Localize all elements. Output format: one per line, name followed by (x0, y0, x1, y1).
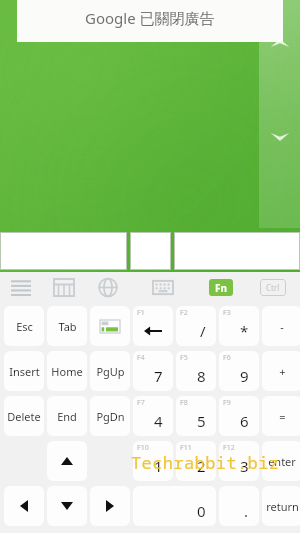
staticText: Ctrl (266, 282, 280, 293)
button[interactable]: Right (90, 486, 130, 526)
staticText: / (200, 321, 206, 341)
button[interactable]: Tab (47, 306, 87, 346)
staticText: Techrabbit.biz (131, 451, 280, 474)
staticText: Esc (16, 319, 33, 334)
staticText: Google 已關閉廣告 (85, 8, 215, 28)
button[interactable]: F11 (176, 441, 216, 481)
button[interactable]: F12 (219, 441, 259, 481)
button[interactable] (0, 232, 127, 270)
button[interactable]: Google 已關閉廣告 (17, 0, 283, 42)
button[interactable]: Language (97, 278, 119, 297)
button[interactable]: F5 (176, 351, 216, 391)
button[interactable]: 0 (133, 486, 216, 526)
staticText: enter (268, 454, 296, 469)
staticText: - (280, 319, 284, 334)
button[interactable]: F4 (133, 351, 173, 391)
staticText: Delete (7, 409, 41, 424)
button[interactable]: Ctrl (260, 279, 286, 296)
staticText: F5 (180, 353, 188, 363)
button[interactable] (174, 232, 300, 270)
staticText: 1 (154, 456, 163, 476)
staticText: Home (51, 364, 83, 379)
button[interactable]: F2 (176, 306, 216, 346)
button[interactable]: End (47, 396, 87, 436)
staticText: F4 (137, 353, 145, 363)
button[interactable]: F10 (133, 441, 173, 481)
button[interactable]: Menu (10, 278, 32, 297)
button[interactable]: F9 (219, 396, 259, 436)
staticText: 6 (240, 411, 249, 431)
button[interactable]: Up (47, 441, 87, 481)
button[interactable] (130, 232, 171, 270)
staticText: F3 (223, 308, 231, 318)
staticText: F2 (180, 308, 188, 318)
button[interactable]: Numpad toggle (90, 306, 130, 346)
button[interactable]: . (219, 486, 259, 526)
staticText: return (266, 499, 299, 514)
button[interactable]: F3 (219, 306, 259, 346)
button[interactable]: Keyboard (152, 278, 174, 297)
button[interactable]: Scroll up (269, 36, 291, 50)
button[interactable]: Delete (4, 396, 44, 436)
button[interactable]: Window (53, 278, 75, 297)
staticText: End (57, 409, 77, 424)
button[interactable]: F8 (176, 396, 216, 436)
staticText: F9 (223, 398, 231, 408)
staticText: Insert (9, 364, 40, 379)
staticText: F1 (137, 308, 145, 318)
staticText: Fn (215, 281, 227, 295)
button[interactable]: Scroll panel (259, 0, 300, 228)
staticText: + (279, 364, 286, 379)
button[interactable]: Insert (4, 351, 44, 391)
button[interactable]: + (262, 351, 300, 391)
button[interactable]: = (262, 396, 300, 436)
staticText: Tab (58, 319, 77, 334)
button[interactable]: Home (47, 351, 87, 391)
staticText: F10 (137, 443, 149, 453)
button[interactable]: Fn (209, 279, 233, 296)
button[interactable]: Down (47, 486, 87, 526)
staticText: 8 (197, 366, 206, 386)
button[interactable]: enter (262, 441, 300, 481)
staticText: 3 (240, 456, 249, 476)
staticText: 9 (240, 366, 249, 386)
button[interactable]: return (262, 486, 300, 526)
staticText: F12 (223, 443, 235, 453)
button[interactable]: Backspace (133, 306, 173, 346)
staticText: F11 (180, 443, 192, 453)
button[interactable]: PgDn (90, 396, 130, 436)
staticText: 5 (197, 411, 206, 431)
staticText: PgUp (96, 364, 125, 379)
staticText: PgDn (96, 409, 125, 424)
staticText: F8 (180, 398, 188, 408)
button[interactable]: Left (4, 486, 44, 526)
staticText: F6 (223, 353, 231, 363)
button[interactable]: - (262, 306, 300, 346)
button[interactable]: F7 (133, 396, 173, 436)
staticText: 0 (197, 501, 206, 521)
staticText: 7 (154, 366, 163, 386)
button[interactable]: Scroll down (269, 130, 291, 144)
staticText: 2 (197, 456, 206, 476)
button[interactable]: PgUp (90, 351, 130, 391)
staticText: F7 (137, 398, 145, 408)
staticText: . (244, 501, 249, 521)
staticText: * (240, 321, 249, 341)
button[interactable]: F6 (219, 351, 259, 391)
button[interactable]: Esc (4, 306, 44, 346)
staticText: = (279, 409, 286, 424)
staticText: 4 (154, 411, 163, 431)
